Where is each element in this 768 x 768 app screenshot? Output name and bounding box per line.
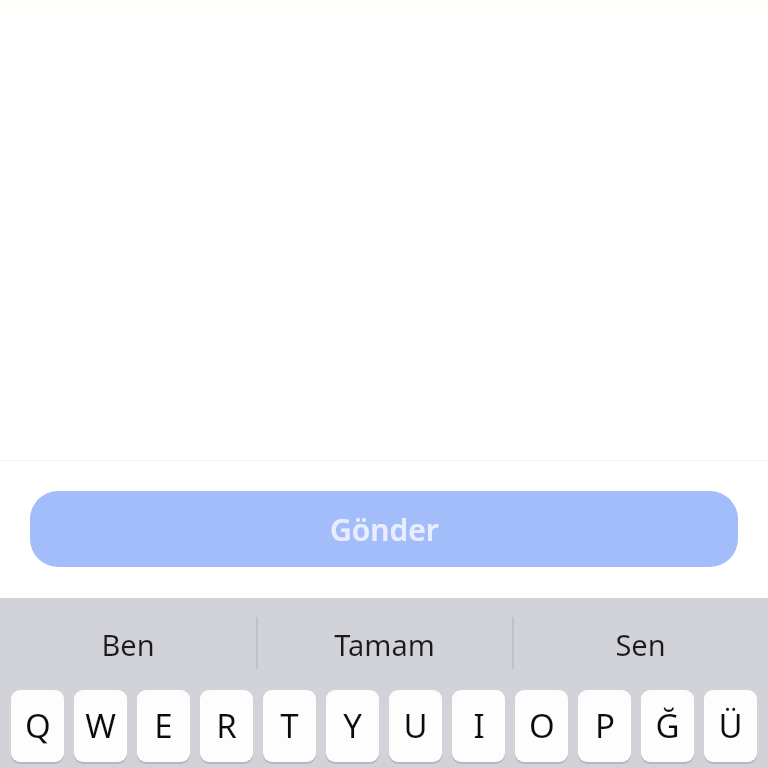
button[interactable]: Sen	[512, 598, 768, 690]
staticText: O	[529, 703, 555, 748]
button[interactable]: Ğ	[641, 690, 694, 764]
staticText: Tamam	[334, 625, 435, 664]
button[interactable]: P	[578, 690, 631, 764]
button[interactable]: U	[389, 690, 442, 764]
button[interactable]: I	[452, 690, 505, 764]
button[interactable]: T	[263, 690, 316, 764]
button[interactable]: Gönder	[30, 491, 738, 567]
button[interactable]: Y	[326, 690, 379, 764]
staticText: I	[473, 703, 485, 748]
staticText: P	[595, 703, 615, 748]
staticText: Y	[343, 703, 362, 748]
staticText: Q	[25, 703, 51, 748]
button[interactable]: W	[74, 690, 127, 764]
staticText: Gönder	[330, 509, 439, 550]
staticText: T	[280, 703, 299, 748]
staticText: Ben	[101, 625, 155, 664]
button[interactable]: E	[137, 690, 190, 764]
staticText: Ü	[718, 703, 743, 748]
button[interactable]: R	[200, 690, 253, 764]
staticText: U	[403, 703, 428, 748]
staticText: Ğ	[655, 703, 680, 748]
button[interactable]: Q	[11, 690, 64, 764]
button[interactable]: O	[515, 690, 568, 764]
staticText: R	[216, 703, 237, 748]
button[interactable]: Ben	[0, 598, 256, 690]
button[interactable]: Tamam	[256, 598, 512, 690]
staticText: E	[154, 703, 173, 748]
staticText: W	[85, 703, 116, 748]
button[interactable]: Ü	[704, 690, 757, 764]
staticText: Sen	[615, 625, 666, 664]
